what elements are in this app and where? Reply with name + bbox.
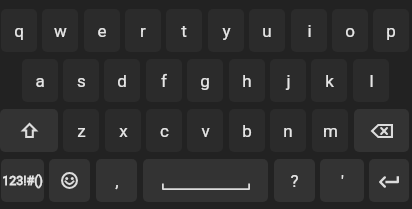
button[interactable]: ' (320, 159, 364, 202)
staticText: c (160, 121, 169, 141)
staticText: w (54, 21, 67, 41)
button[interactable]: i (291, 9, 327, 52)
button[interactable]: Emoji (49, 159, 90, 202)
button[interactable]: x (105, 109, 141, 152)
button[interactable]: k (311, 59, 347, 102)
button[interactable]: v (187, 109, 223, 152)
staticText: r (140, 21, 146, 41)
staticText: q (14, 21, 24, 41)
button[interactable]: o (332, 9, 368, 52)
staticText: h (242, 71, 252, 91)
button[interactable]: Space (143, 159, 268, 202)
staticText: ? (290, 171, 299, 191)
staticText: u (262, 21, 272, 41)
button[interactable]: r (125, 9, 161, 52)
button[interactable]: Backspace (354, 109, 409, 152)
staticText: b (242, 121, 252, 141)
staticText: a (35, 71, 45, 91)
button[interactable]: e (84, 9, 120, 52)
button[interactable]: m (312, 109, 348, 152)
button[interactable]: d (104, 59, 140, 102)
staticText: d (117, 71, 127, 91)
staticText: o (345, 21, 355, 41)
button[interactable]: n (270, 109, 306, 152)
button[interactable]: c (146, 109, 182, 152)
button[interactable]: s (63, 59, 99, 102)
staticText: m (323, 121, 338, 141)
staticText: , (115, 171, 119, 191)
staticText: l (369, 71, 374, 91)
staticText: v (201, 121, 210, 141)
staticText: p (386, 21, 396, 41)
staticText: i (307, 21, 312, 41)
staticText: z (77, 121, 86, 141)
staticText: j (286, 71, 291, 91)
button[interactable]: l (353, 59, 389, 102)
button[interactable]: u (249, 9, 285, 52)
staticText: 123!#() (2, 173, 43, 188)
button[interactable]: a (22, 59, 58, 102)
button[interactable]: w (42, 9, 78, 52)
button[interactable]: g (187, 59, 223, 102)
staticText: k (325, 71, 334, 91)
button[interactable]: t (166, 9, 202, 52)
staticText: f (161, 71, 167, 91)
button[interactable]: z (63, 109, 99, 152)
staticText: t (181, 21, 187, 41)
button[interactable]: Enter (369, 159, 409, 202)
button[interactable]: q (1, 9, 37, 52)
button[interactable]: b (229, 109, 265, 152)
button[interactable]: j (270, 59, 306, 102)
staticText: e (97, 21, 107, 41)
staticText: y (222, 21, 231, 41)
button[interactable]: p (373, 9, 409, 52)
button[interactable]: f (146, 59, 182, 102)
button[interactable]: Shift (0, 109, 58, 152)
button[interactable]: h (229, 59, 265, 102)
staticText: x (119, 121, 128, 141)
staticText: n (283, 121, 293, 141)
button[interactable]: 123!#() (1, 159, 44, 202)
staticText: g (200, 71, 210, 91)
staticText: ' (341, 171, 344, 191)
button[interactable]: ? (274, 159, 315, 202)
staticText: s (77, 71, 86, 91)
button[interactable]: y (208, 9, 244, 52)
button[interactable]: , (96, 159, 137, 202)
